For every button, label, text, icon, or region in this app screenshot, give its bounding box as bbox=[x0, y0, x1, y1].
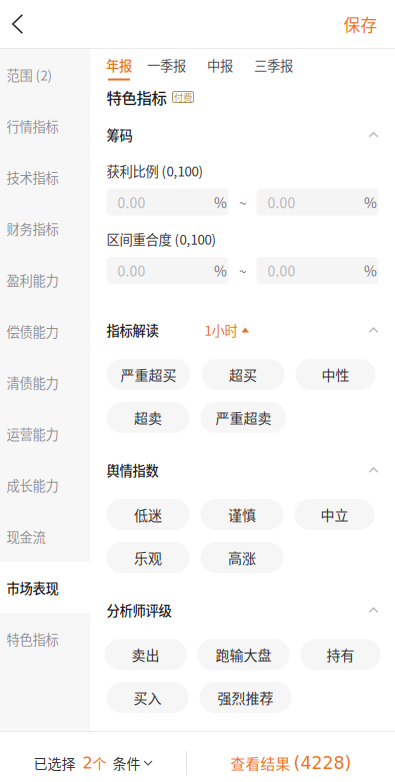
staticText: 中报 bbox=[207, 55, 233, 75]
staticText: 0.00 bbox=[117, 260, 145, 281]
staticText: 2 bbox=[82, 754, 92, 772]
staticText: 财务指标 bbox=[6, 219, 58, 238]
button[interactable]: 行情指标 bbox=[0, 100, 90, 152]
staticText: 低迷 bbox=[134, 504, 162, 525]
staticText: 超卖 bbox=[134, 407, 162, 428]
button[interactable]: 乐观 bbox=[106, 542, 189, 573]
staticText: 现金流 bbox=[6, 527, 45, 546]
staticText: 特色指标 bbox=[6, 629, 58, 649]
button[interactable]: 中立 bbox=[294, 499, 374, 530]
staticText: 高涨 bbox=[228, 547, 256, 568]
staticText: 年报 bbox=[106, 55, 132, 75]
button[interactable]: 超卖 bbox=[106, 402, 189, 433]
staticText: 行情指标 bbox=[6, 116, 58, 136]
staticText: 偿债能力 bbox=[6, 321, 58, 341]
staticText: % bbox=[364, 192, 377, 212]
button[interactable]: 中性 bbox=[295, 359, 375, 390]
button[interactable]: 跑输大盘 bbox=[197, 639, 289, 670]
button[interactable]: 运营能力 bbox=[0, 408, 90, 459]
staticText: 舆情指数 bbox=[106, 460, 158, 480]
staticText: 谨慎 bbox=[228, 504, 256, 525]
button[interactable]: 查看结果 bbox=[187, 732, 395, 782]
staticText: 已选择 bbox=[33, 753, 75, 773]
staticText: 个 bbox=[92, 753, 106, 773]
staticText: 运营能力 bbox=[6, 424, 58, 443]
staticText: 成长能力 bbox=[6, 475, 58, 495]
button[interactable]: 低迷 bbox=[106, 499, 189, 530]
button[interactable]: 盈利能力 bbox=[0, 254, 90, 305]
button[interactable]: 持有 bbox=[300, 639, 380, 670]
staticText: 0.00 bbox=[117, 192, 145, 212]
staticText: 0.00 bbox=[267, 192, 295, 212]
staticText: 中立 bbox=[320, 504, 348, 525]
staticText: 跑输大盘 bbox=[215, 644, 271, 665]
button[interactable]: 市场表现 bbox=[0, 562, 90, 613]
button[interactable]: 偿债能力 bbox=[0, 305, 90, 357]
button[interactable]: 保存 bbox=[315, 0, 395, 48]
button[interactable]: 严重超卖 bbox=[200, 402, 286, 433]
button[interactable]: 特色指标 bbox=[0, 613, 90, 665]
button[interactable]: 卖出 bbox=[104, 639, 186, 670]
button[interactable]: 严重超买 bbox=[106, 359, 190, 390]
staticText: 查看结果 bbox=[230, 752, 290, 774]
staticText: 付费 bbox=[174, 90, 192, 104]
staticText: ~ bbox=[239, 261, 246, 280]
staticText: 卖出 bbox=[131, 644, 159, 665]
staticText: 持有 bbox=[326, 644, 354, 665]
staticText: 市场表现 bbox=[6, 578, 58, 597]
staticText: (4228) bbox=[293, 753, 351, 773]
staticText: 区间重合度 (0,100) bbox=[106, 229, 216, 249]
button[interactable]: 强烈推荐 bbox=[199, 682, 291, 713]
staticText: 中性 bbox=[321, 364, 349, 385]
button[interactable]: 已选择 bbox=[0, 732, 186, 782]
staticText: 严重超卖 bbox=[215, 407, 271, 428]
button[interactable]: 超买 bbox=[201, 359, 284, 390]
staticText: 1小时 bbox=[204, 320, 237, 340]
staticText: 0.00 bbox=[267, 260, 295, 281]
staticText: 保存 bbox=[343, 12, 377, 36]
staticText: 技术指标 bbox=[6, 168, 58, 187]
staticText: 盈利能力 bbox=[6, 270, 58, 289]
staticText: 条件 bbox=[112, 753, 140, 773]
button[interactable]: 买入 bbox=[106, 682, 188, 713]
button[interactable]: 谨慎 bbox=[200, 499, 283, 530]
staticText: 范围 (2) bbox=[6, 65, 52, 84]
button[interactable]: 技术指标 bbox=[0, 152, 90, 203]
staticText: 超买 bbox=[229, 364, 257, 385]
staticText: 获利比例 (0,100) bbox=[106, 161, 203, 180]
staticText: 买入 bbox=[133, 687, 161, 708]
staticText: 分析师评级 bbox=[106, 600, 171, 620]
staticText: 强烈推荐 bbox=[217, 687, 273, 708]
staticText: 筹码 bbox=[106, 125, 132, 144]
staticText: 指标解读 bbox=[106, 320, 158, 340]
button[interactable]: 财务指标 bbox=[0, 203, 90, 254]
staticText: 一季报 bbox=[147, 55, 186, 75]
staticText: 乐观 bbox=[134, 547, 162, 568]
staticText: 严重超买 bbox=[120, 364, 176, 385]
button[interactable]: 清债能力 bbox=[0, 357, 90, 408]
button[interactable]: 高涨 bbox=[200, 542, 283, 573]
staticText: % bbox=[364, 260, 377, 281]
staticText: % bbox=[214, 260, 227, 281]
staticText: 特色指标 bbox=[106, 86, 166, 108]
button[interactable]: 现金流 bbox=[0, 511, 90, 562]
button[interactable]: 返回 bbox=[0, 0, 56, 48]
staticText: 清债能力 bbox=[6, 373, 58, 392]
button[interactable]: 范围 (2) bbox=[0, 49, 90, 100]
staticText: % bbox=[214, 192, 227, 212]
button[interactable]: 成长能力 bbox=[0, 459, 90, 511]
staticText: ~ bbox=[239, 192, 246, 212]
staticText: 三季报 bbox=[254, 55, 293, 75]
